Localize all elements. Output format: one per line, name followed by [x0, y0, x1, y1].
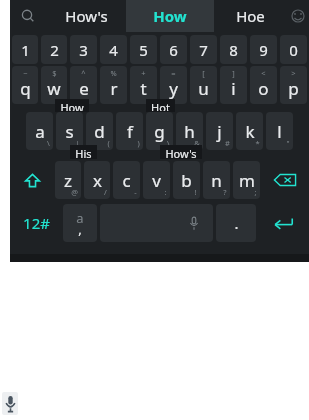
staticText: How: [60, 100, 84, 111]
staticText: w: [47, 77, 61, 100]
button[interactable]: a: [26, 112, 53, 150]
button[interactable]: s: [56, 112, 83, 150]
button[interactable]: w: [41, 66, 67, 104]
button[interactable]: p: [280, 66, 307, 104]
staticText: i: [231, 77, 236, 100]
staticText: h: [184, 120, 195, 143]
button[interactable]: How: [60, 100, 84, 111]
staticText: t: [140, 77, 147, 100]
button[interactable]: e: [70, 66, 97, 104]
staticText: \: [47, 138, 50, 148]
button[interactable]: k: [236, 112, 263, 150]
button[interactable]: b: [173, 161, 200, 199]
staticText: ): [137, 138, 140, 148]
button[interactable]: Hoe: [214, 0, 286, 32]
staticText: u: [198, 77, 209, 100]
button[interactable]: 8: [220, 35, 247, 64]
staticText: Hot: [151, 100, 170, 111]
staticText: j: [217, 120, 222, 143]
button[interactable]: How's: [46, 0, 126, 32]
button[interactable]: h: [176, 112, 203, 150]
button[interactable]: Space: [100, 204, 213, 242]
button[interactable]: How: [126, 0, 214, 32]
button[interactable]: c: [113, 161, 140, 199]
staticText: c: [122, 169, 131, 192]
button[interactable]: 3: [70, 35, 97, 64]
staticText: .: [234, 213, 239, 233]
staticText: a: [76, 209, 84, 227]
staticText: @: [71, 187, 78, 197]
button[interactable]: Voice input: [2, 392, 18, 415]
staticText: ~: [23, 68, 28, 78]
button[interactable]: 12#: [12, 204, 60, 242]
staticText: His: [75, 146, 92, 158]
staticText: r: [110, 77, 118, 100]
staticText: s: [65, 120, 74, 143]
staticText: 4: [109, 40, 118, 60]
staticText: How: [153, 6, 187, 26]
staticText: n: [211, 169, 222, 192]
staticText: e: [79, 77, 89, 100]
button[interactable]: x: [84, 161, 110, 199]
button[interactable]: Shift: [12, 161, 52, 199]
button[interactable]: Search: [10, 0, 46, 32]
staticText: 5: [139, 40, 148, 60]
button[interactable]: 2: [41, 35, 67, 64]
button[interactable]: Enter: [259, 204, 307, 242]
button[interactable]: z: [55, 161, 81, 199]
staticText: z: [64, 169, 72, 192]
staticText: l: [277, 120, 282, 143]
staticText: +: [141, 68, 146, 78]
staticText: b: [181, 169, 192, 192]
button[interactable]: q: [12, 66, 38, 104]
button[interactable]: t: [130, 66, 157, 104]
button[interactable]: His: [75, 146, 92, 158]
button[interactable]: l: [266, 112, 293, 150]
button[interactable]: f: [116, 112, 143, 150]
staticText: m: [239, 169, 255, 192]
button[interactable]: 1: [12, 35, 38, 64]
staticText: Hoe: [236, 6, 265, 26]
button[interactable]: Emoji: [286, 0, 309, 32]
button[interactable]: v: [143, 161, 170, 199]
button[interactable]: 6: [160, 35, 187, 64]
staticText: o: [258, 77, 269, 100]
staticText: p: [288, 77, 299, 100]
staticText: $: [52, 68, 57, 78]
button[interactable]: r: [100, 66, 127, 104]
staticText: f: [127, 120, 133, 143]
button[interactable]: d: [86, 112, 113, 150]
button[interactable]: o: [250, 66, 277, 104]
staticText: ": [286, 138, 290, 148]
staticText: a: [35, 120, 45, 143]
button[interactable]: Backspace: [263, 161, 307, 199]
staticText: d: [94, 120, 105, 143]
button[interactable]: j: [206, 112, 233, 150]
staticText: 3: [79, 40, 88, 60]
button[interactable]: 4: [100, 35, 127, 64]
button[interactable]: y: [160, 66, 187, 104]
staticText: :: [164, 187, 167, 197]
staticText: 9: [259, 40, 268, 60]
button[interactable]: 9: [250, 35, 277, 64]
button[interactable]: Hot: [151, 100, 170, 111]
button[interactable]: u: [190, 66, 217, 104]
button[interactable]: .: [216, 204, 256, 242]
staticText: ?: [223, 187, 227, 197]
button[interactable]: 7: [190, 35, 217, 64]
button[interactable]: g: [146, 112, 173, 150]
staticText: [: [202, 68, 205, 78]
staticText: ]: [232, 68, 235, 78]
button[interactable]: 0: [280, 35, 307, 64]
button[interactable]: i: [220, 66, 247, 104]
staticText: ,: [78, 220, 82, 238]
button[interactable]: How's: [165, 146, 197, 158]
staticText: ^: [81, 68, 86, 78]
button[interactable]: 5: [130, 35, 157, 64]
staticText: <: [261, 68, 266, 78]
staticText: #: [225, 138, 230, 148]
staticText: ;: [254, 187, 257, 197]
button[interactable]: n: [203, 161, 230, 199]
button[interactable]: m: [233, 161, 260, 199]
button[interactable]: a: [63, 204, 97, 242]
